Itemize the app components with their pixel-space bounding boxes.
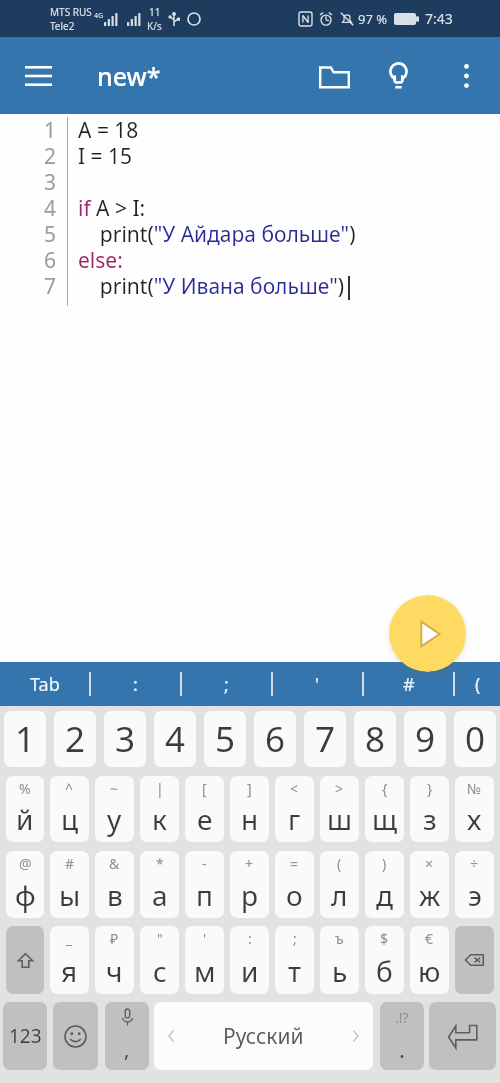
staticText: ; (293, 929, 297, 948)
staticText: } (427, 779, 433, 798)
staticText: п (196, 876, 213, 914)
button[interactable]: = (275, 851, 314, 918)
staticText: ч (106, 952, 123, 990)
button[interactable]: ) (365, 851, 404, 918)
button[interactable]: ' (273, 662, 362, 706)
staticText: ] (247, 779, 252, 798)
button[interactable]: ^ (50, 776, 89, 842)
staticText: ) (382, 854, 387, 873)
staticText: 5 (44, 220, 57, 246)
button[interactable]: Run (389, 595, 466, 672)
staticText: № (467, 779, 482, 798)
button[interactable]: Enter (429, 1002, 496, 1070)
button[interactable]: Emoji (53, 1002, 98, 1070)
staticText: Tab (30, 672, 60, 697)
button[interactable]: Menu (14, 52, 62, 100)
button[interactable]: 4 (154, 711, 196, 767)
button[interactable]: € (410, 926, 449, 994)
button[interactable]: Русский (154, 1002, 373, 1070)
button[interactable]: # (50, 851, 89, 918)
staticText: € (425, 929, 434, 948)
button[interactable]: ; (182, 662, 271, 706)
button[interactable]: ' (185, 926, 224, 994)
button[interactable]: { (365, 776, 404, 842)
staticText: ( (337, 854, 342, 873)
button[interactable]: ( (320, 851, 359, 918)
button[interactable]: & (95, 851, 134, 918)
button[interactable]: - (185, 851, 224, 918)
staticText: > (335, 779, 344, 798)
button[interactable]: Symbols (3, 1002, 47, 1070)
button[interactable]: 1 (4, 711, 46, 767)
button[interactable]: 2 (54, 711, 96, 767)
button[interactable]: 9 (404, 711, 446, 767)
button[interactable]: $ (365, 926, 404, 994)
button[interactable]: Open file (311, 53, 357, 99)
button[interactable]: 3 (104, 711, 146, 767)
button[interactable]: Tab (0, 662, 89, 706)
button[interactable]: × (410, 851, 449, 918)
staticText: else: (78, 246, 123, 272)
staticText: т (288, 952, 302, 990)
button[interactable]: Hint (375, 53, 421, 99)
button[interactable]: 8 (354, 711, 396, 767)
button[interactable]: Shift (6, 926, 44, 994)
button[interactable]: 6 (254, 711, 296, 767)
staticText: A = 18 (78, 116, 139, 142)
button[interactable]: : (91, 662, 180, 706)
staticText: 6 (265, 715, 286, 763)
button[interactable]: ( (455, 662, 500, 706)
button[interactable]: " (140, 926, 179, 994)
button[interactable]: @ (6, 851, 44, 918)
staticText: н (241, 800, 259, 838)
staticText: з (423, 800, 437, 838)
button[interactable]: ÷ (455, 851, 494, 918)
staticText: с (153, 952, 167, 990)
staticText: " (157, 929, 163, 948)
staticText: I = 15 (78, 142, 133, 168)
button[interactable]: № (455, 776, 494, 842)
button[interactable]: | (140, 776, 179, 842)
staticText: ' (203, 929, 207, 948)
staticText: . (399, 1034, 405, 1064)
button[interactable]: ] (230, 776, 269, 842)
staticText: # (65, 854, 75, 873)
button[interactable]: ъ (320, 926, 359, 994)
button[interactable]: ₽ (95, 926, 134, 994)
button[interactable]: 0 (454, 711, 496, 767)
staticText: 0 (465, 715, 486, 763)
staticText: { (382, 779, 388, 798)
button[interactable]: : (230, 926, 269, 994)
button[interactable]: Voice input (105, 1002, 149, 1070)
button[interactable]: 7 (304, 711, 346, 767)
button[interactable]: ~ (95, 776, 134, 842)
staticText: я (61, 952, 78, 990)
button[interactable]: * (140, 851, 179, 918)
button[interactable]: + (230, 851, 269, 918)
staticText: ( (475, 672, 481, 697)
button[interactable]: ; (275, 926, 314, 994)
staticText: ' (315, 672, 320, 697)
button[interactable]: [ (185, 776, 224, 842)
staticText: д (376, 876, 393, 914)
staticText: у (107, 800, 122, 838)
button[interactable]: Punctuation (380, 1002, 424, 1070)
button[interactable]: < (275, 776, 314, 842)
staticText: г (288, 800, 301, 838)
button[interactable]: % (6, 776, 44, 842)
staticText: 97 % (358, 10, 388, 28)
staticText: 1 (44, 116, 57, 142)
button[interactable]: # (364, 662, 453, 706)
staticText: ы (59, 876, 81, 914)
staticText: 8 (365, 715, 386, 763)
staticText: : (248, 929, 252, 948)
button[interactable]: > (320, 776, 359, 842)
staticText: ^ (65, 779, 74, 798)
button[interactable]: _ (50, 926, 89, 994)
button[interactable]: More options (443, 53, 489, 99)
button[interactable]: 5 (204, 711, 246, 767)
button[interactable]: } (410, 776, 449, 842)
button[interactable]: Backspace (455, 926, 494, 994)
staticText: 7:43 (425, 9, 453, 28)
staticText: 5 (215, 715, 236, 763)
